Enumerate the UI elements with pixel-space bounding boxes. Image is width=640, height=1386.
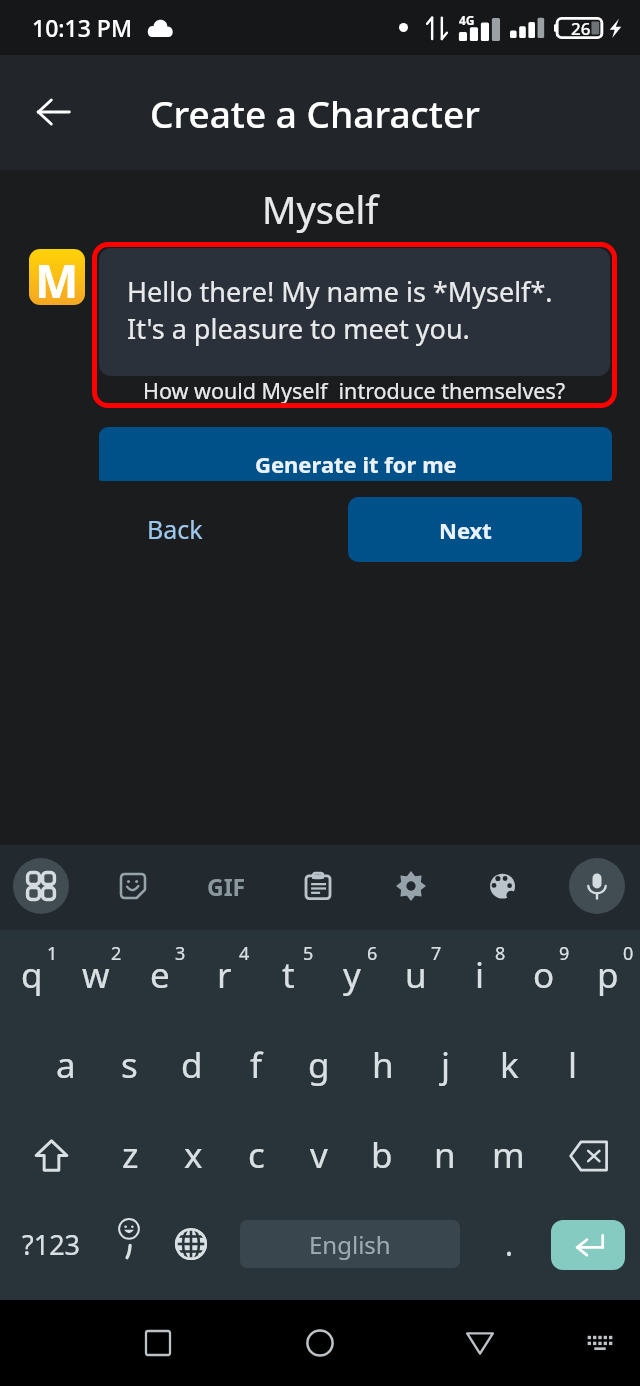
staticText: 10:13 PM (32, 12, 133, 43)
staticText: q (21, 951, 43, 999)
button[interactable]: t (256, 931, 320, 1019)
button[interactable]: k (477, 1021, 541, 1109)
staticText: e (150, 951, 170, 999)
button[interactable]: j (414, 1021, 478, 1109)
staticText: M (35, 249, 79, 305)
button[interactable]: x (161, 1111, 225, 1199)
button[interactable]: Language (155, 1200, 227, 1288)
staticText: z (122, 1131, 139, 1179)
staticText: t (282, 951, 295, 999)
staticText: Hello there! My name is *Myself*. (127, 273, 553, 310)
button[interactable]: Emoji (93, 1196, 165, 1284)
button[interactable]: Enter (551, 1220, 625, 1270)
button[interactable]: s (97, 1021, 161, 1109)
staticText: Back (147, 512, 203, 546)
staticText: u (405, 951, 427, 999)
button[interactable]: o (512, 931, 576, 1019)
staticText: 4G (459, 12, 475, 28)
button[interactable]: Back (136, 505, 214, 553)
staticText: s (121, 1041, 138, 1089)
staticText: English (309, 1228, 391, 1261)
button[interactable]: f (224, 1021, 288, 1109)
staticText: 2 (111, 941, 122, 965)
button[interactable]: n (413, 1111, 477, 1199)
staticText: g (308, 1041, 330, 1089)
button[interactable]: p (576, 931, 640, 1019)
staticText: f (250, 1041, 263, 1089)
button[interactable]: i (448, 931, 512, 1019)
staticText: j (441, 1041, 451, 1089)
button[interactable]: Hide keyboard (572, 1315, 628, 1371)
button[interactable]: Back (21, 80, 85, 144)
button[interactable]: Home (292, 1315, 348, 1371)
staticText: . (505, 1224, 514, 1265)
button[interactable]: Hello there! My name is *Myself*. (92, 242, 617, 408)
staticText: 4 (239, 941, 250, 965)
staticText: v (310, 1131, 328, 1179)
button[interactable]: b (350, 1111, 414, 1199)
button[interactable]: d (160, 1021, 224, 1109)
button[interactable]: Clipboard (290, 858, 346, 914)
staticText: r (217, 951, 232, 999)
button[interactable]: w (64, 931, 128, 1019)
staticText: l (568, 1041, 578, 1089)
button[interactable]: GIF (198, 858, 254, 914)
staticText: p (597, 951, 619, 999)
button[interactable]: g (287, 1021, 351, 1109)
staticText: m (492, 1131, 525, 1179)
staticText: 7 (431, 941, 442, 965)
staticText: 26 (571, 17, 591, 40)
button[interactable]: l (541, 1021, 605, 1109)
staticText: x (184, 1131, 203, 1179)
staticText: k (500, 1041, 519, 1089)
button[interactable]: q (0, 931, 64, 1019)
button[interactable]: e (128, 931, 192, 1019)
button[interactable]: ?123 (19, 1200, 83, 1288)
button[interactable]: y (320, 931, 384, 1019)
staticText: It's a pleasure to meet you. (127, 310, 470, 347)
button[interactable]: c (224, 1111, 288, 1199)
button[interactable]: Character avatar (29, 249, 85, 305)
button[interactable]: Themes (475, 858, 531, 914)
button[interactable]: Settings (383, 858, 439, 914)
staticText: h (372, 1041, 394, 1089)
button[interactable]: Apps (13, 858, 69, 914)
staticText: GIF (207, 871, 246, 902)
button[interactable]: Backspace (553, 1112, 625, 1200)
staticText: b (371, 1131, 393, 1179)
button[interactable]: m (476, 1111, 540, 1199)
staticText: i (475, 951, 485, 999)
button[interactable]: v (287, 1111, 351, 1199)
button[interactable]: Recent apps (130, 1315, 186, 1371)
button[interactable]: . (477, 1200, 541, 1288)
staticText: o (533, 951, 555, 999)
staticText: w (82, 951, 110, 999)
button[interactable]: z (98, 1111, 162, 1199)
button[interactable]: Generate it for me (99, 427, 612, 481)
button[interactable]: a (34, 1021, 98, 1109)
staticText: Generate it for me (255, 449, 457, 479)
button[interactable]: Voice input (569, 858, 625, 914)
button[interactable]: Next (348, 497, 582, 562)
staticText: y (343, 951, 361, 999)
staticText: 8 (495, 941, 506, 965)
staticText: Myself (262, 183, 379, 235)
staticText: How would Myself introduce themselves? (143, 376, 566, 405)
staticText: 6 (367, 941, 378, 965)
button[interactable]: Stickers (105, 858, 161, 914)
staticText: Next (439, 515, 492, 545)
staticText: Create a Character (150, 88, 480, 138)
staticText: ?123 (22, 1226, 81, 1263)
button[interactable]: English (240, 1220, 460, 1268)
staticText: 3 (175, 941, 186, 965)
button[interactable]: Back (452, 1315, 508, 1371)
button[interactable]: r (192, 931, 256, 1019)
staticText: 0 (623, 941, 634, 965)
staticText: n (434, 1131, 456, 1179)
button[interactable]: u (384, 931, 448, 1019)
button[interactable]: h (351, 1021, 415, 1109)
button[interactable]: Shift (15, 1111, 87, 1199)
staticText: 9 (559, 941, 570, 965)
staticText: c (248, 1131, 265, 1179)
staticText: d (181, 1041, 203, 1089)
